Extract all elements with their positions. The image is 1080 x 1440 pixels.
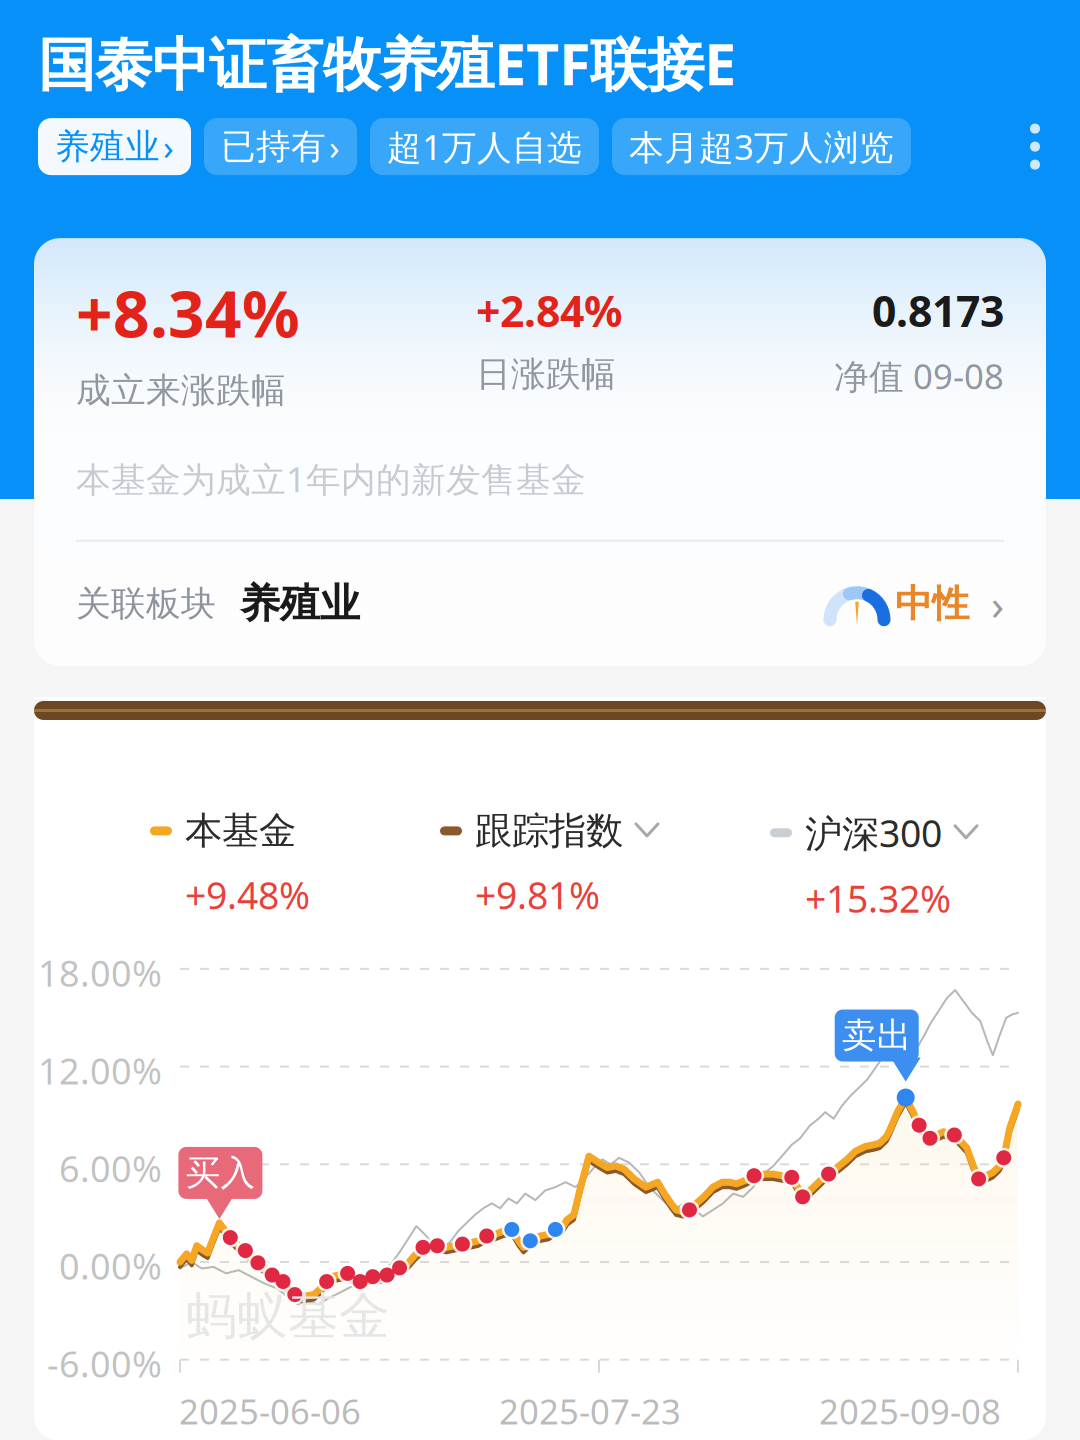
staticText: -6.00% [47, 1340, 162, 1387]
staticText: +15.32% [805, 874, 951, 923]
button[interactable]: More options [998, 118, 1072, 175]
staticText: 成立来涨跌幅 [76, 369, 286, 412]
staticText: 中性 [895, 581, 969, 627]
staticText: 本月超3万人浏览 [629, 124, 894, 170]
staticText: 养殖业 [216, 579, 360, 628]
button[interactable]: 已持有 [204, 118, 357, 175]
staticText: 蚂蚁基金 [186, 1285, 390, 1347]
staticText: +9.48% [185, 870, 310, 919]
staticText: 跟踪指数 [475, 808, 623, 854]
staticText: 本基金为成立1年内的新发售基金 [76, 456, 586, 502]
staticText: 关联板块 [76, 582, 216, 625]
staticText: 2025-06-06 [179, 1388, 361, 1434]
button[interactable]: 关联板块 [34, 542, 1046, 666]
staticText: 12.00% [38, 1047, 162, 1094]
button[interactable]: 超1万人自选 [370, 118, 599, 175]
staticText: 买入 [185, 1152, 255, 1194]
staticText: +9.81% [475, 870, 600, 919]
staticText: 0.00% [59, 1242, 162, 1290]
staticText: 超1万人自选 [387, 124, 582, 170]
staticText: › [969, 575, 1004, 632]
staticText: 养殖业 [55, 125, 160, 168]
staticText: +2.84% [476, 282, 622, 339]
staticText: 沪深300 [805, 808, 942, 858]
staticText: 国泰中证畜牧养殖ETF联接E [38, 25, 736, 101]
button[interactable]: 本月超3万人浏览 [612, 118, 911, 175]
staticText: › [329, 124, 340, 170]
button[interactable]: 养殖业 [38, 118, 191, 175]
staticText: 日涨跌幅 [476, 353, 616, 395]
staticText: 本基金 [185, 808, 296, 854]
staticText: 已持有 [221, 125, 326, 168]
staticText: 0.8173 [872, 282, 1004, 339]
staticText: 2025-09-08 [819, 1388, 1001, 1434]
staticText: › [163, 124, 174, 170]
staticText: 2025-07-23 [499, 1388, 681, 1434]
staticText: 卖出 [842, 1014, 912, 1057]
staticText: 6.00% [59, 1144, 162, 1192]
staticText: 净值 09-08 [834, 353, 1004, 399]
staticText: +8.34% [76, 270, 300, 355]
staticText: 18.00% [38, 949, 162, 997]
